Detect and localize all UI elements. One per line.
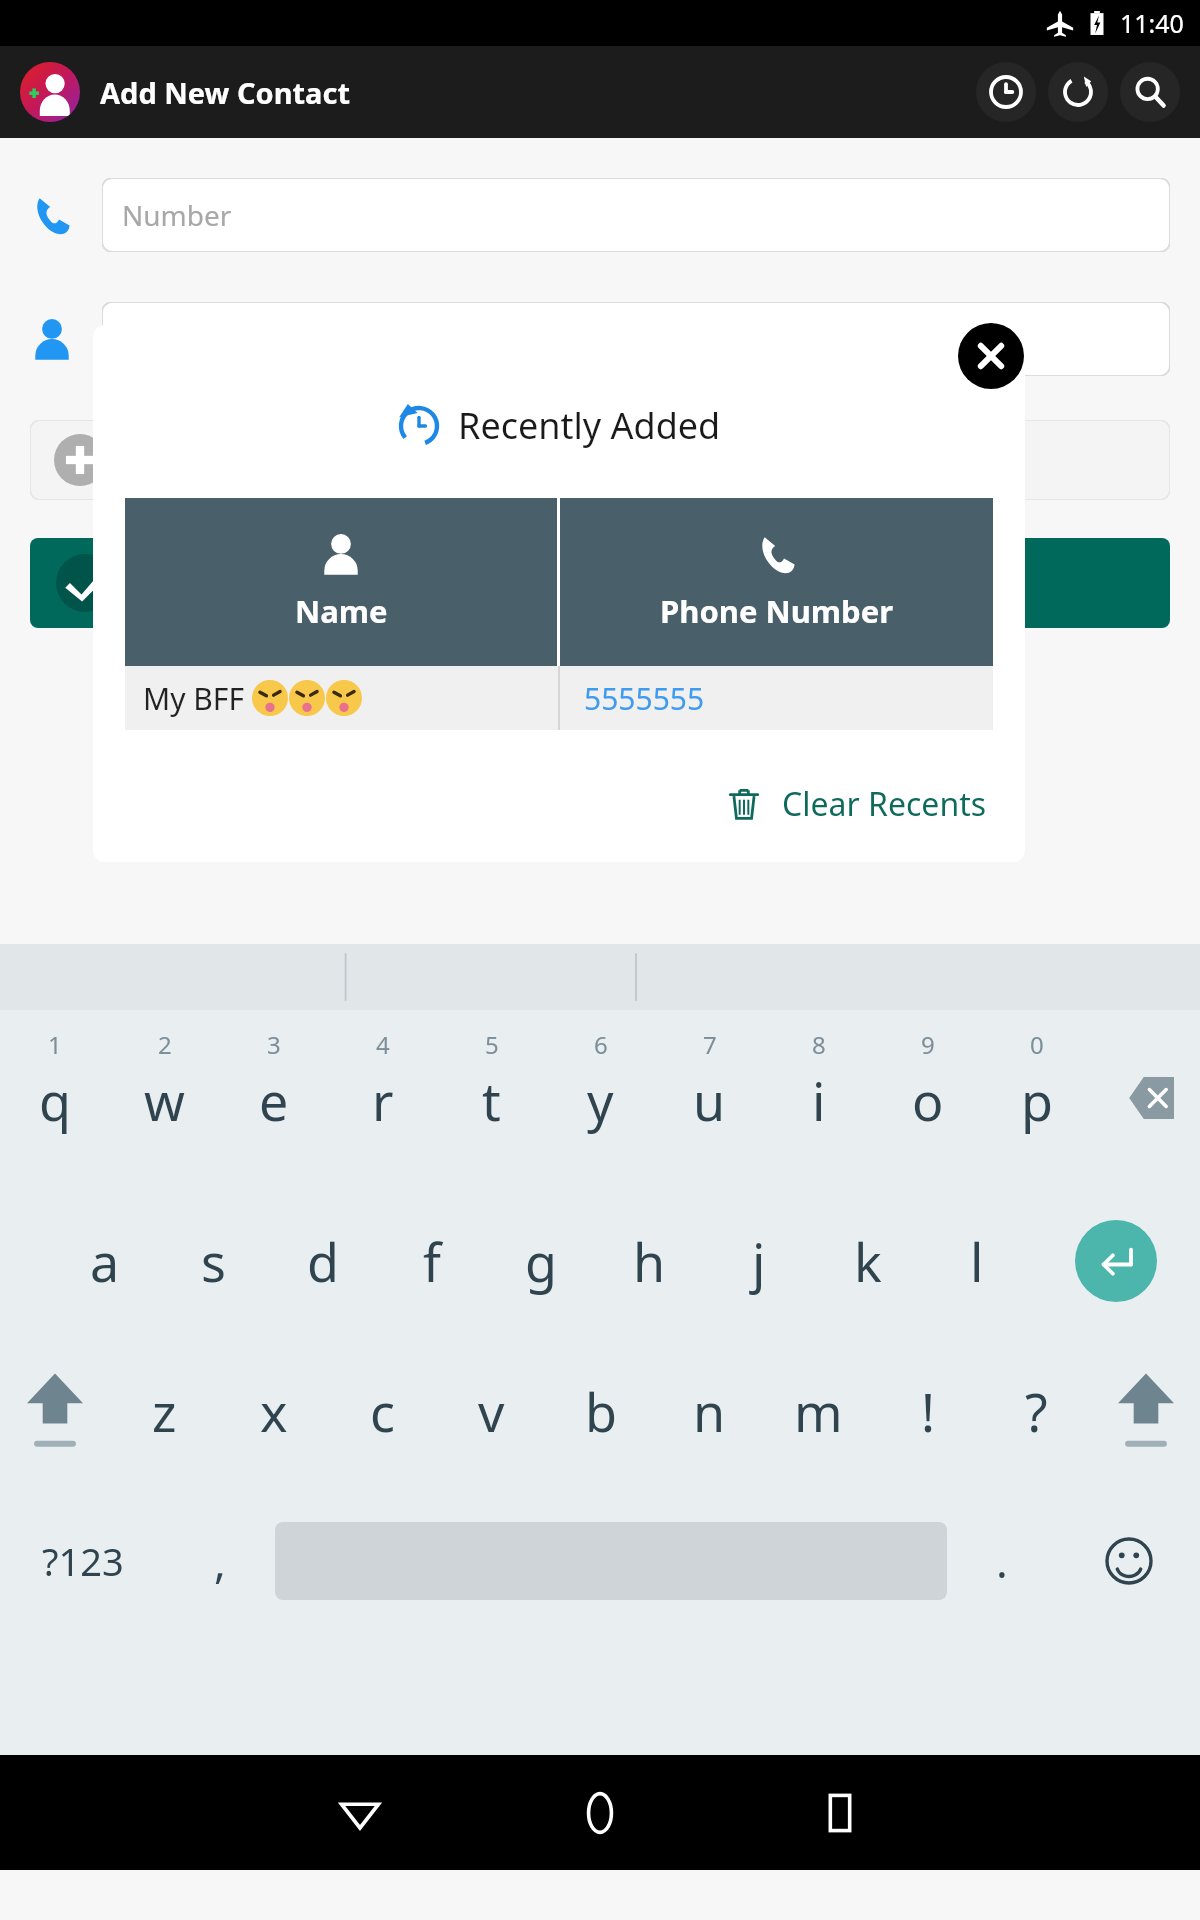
button[interactable]: Clear Recents xyxy=(716,774,997,834)
button[interactable]: Search xyxy=(1120,62,1180,122)
button[interactable]: Name xyxy=(125,498,557,666)
staticText: ! xyxy=(921,1376,935,1447)
button[interactable]: k xyxy=(813,1186,922,1336)
button[interactable]: s xyxy=(159,1186,268,1336)
button[interactable]: Save contact xyxy=(30,538,1170,628)
button[interactable]: c xyxy=(328,1336,437,1486)
button[interactable]: Home xyxy=(480,1755,720,1870)
staticText: f xyxy=(423,1226,441,1297)
staticText: l xyxy=(970,1226,984,1297)
staticText: b xyxy=(585,1376,617,1447)
staticText: x xyxy=(260,1376,288,1447)
staticText: w xyxy=(144,1065,185,1136)
staticText: 2 xyxy=(158,1028,172,1061)
button[interactable] xyxy=(102,302,1170,376)
staticText: t xyxy=(482,1065,501,1136)
button[interactable]: 1 xyxy=(0,1010,110,1186)
staticText: Name xyxy=(295,590,388,632)
button[interactable]: 0 xyxy=(982,1010,1091,1186)
staticText: 6 xyxy=(594,1028,608,1061)
staticText: a xyxy=(90,1226,120,1297)
button[interactable]: , xyxy=(165,1486,275,1636)
staticText: q xyxy=(39,1065,71,1136)
button[interactable]: ! xyxy=(873,1336,982,1486)
button[interactable]: 6 xyxy=(546,1010,655,1186)
button[interactable]: ?123 xyxy=(0,1486,165,1636)
button[interactable]: 8 xyxy=(764,1010,873,1186)
staticText: ? xyxy=(1025,1376,1048,1447)
button[interactable]: 9 xyxy=(873,1010,982,1186)
staticText: y xyxy=(587,1065,614,1136)
staticText: 5555555 xyxy=(584,678,705,719)
staticText: e xyxy=(259,1065,289,1136)
button[interactable]: Back xyxy=(240,1755,480,1870)
button[interactable]: n xyxy=(655,1336,764,1486)
button[interactable]: Contact avatar xyxy=(20,62,80,122)
staticText: . xyxy=(996,1531,1008,1591)
button[interactable]: f xyxy=(377,1186,486,1336)
button[interactable]: My BFF xyxy=(125,666,993,730)
button[interactable]: Backspace xyxy=(1091,1010,1200,1186)
button[interactable]: z xyxy=(110,1336,219,1486)
staticText: 4 xyxy=(376,1028,390,1061)
staticText: o xyxy=(912,1065,944,1136)
button[interactable]: 4 xyxy=(328,1010,437,1186)
staticText: 0 xyxy=(1030,1028,1044,1061)
button[interactable]: Enter xyxy=(1031,1186,1200,1336)
staticText: i xyxy=(812,1065,826,1136)
button[interactable]: a xyxy=(50,1186,159,1336)
button[interactable]: Shift xyxy=(1091,1336,1200,1486)
button[interactable]: 3 xyxy=(219,1010,328,1186)
button[interactable]: m xyxy=(764,1336,873,1486)
button[interactable]: Close xyxy=(958,323,1024,389)
staticText: s xyxy=(201,1226,226,1297)
button[interactable]: x xyxy=(219,1336,328,1486)
button[interactable]: Recent apps xyxy=(720,1755,960,1870)
staticText: m xyxy=(794,1376,843,1447)
staticText: j xyxy=(752,1226,766,1297)
staticText: Number xyxy=(122,196,232,234)
staticText: Phone Number xyxy=(660,590,894,632)
button[interactable]: Add another field xyxy=(30,420,1170,500)
staticText: , xyxy=(214,1531,226,1591)
staticText: Recently Added xyxy=(458,401,721,450)
button[interactable]: Shift xyxy=(0,1336,110,1486)
button[interactable]: 7 xyxy=(655,1010,764,1186)
staticText: c xyxy=(370,1376,395,1447)
button[interactable]: . xyxy=(947,1486,1057,1636)
button[interactable]: l xyxy=(922,1186,1031,1336)
staticText: ?123 xyxy=(42,1535,124,1587)
staticText: Clear Recents xyxy=(782,782,987,826)
staticText: u xyxy=(693,1065,726,1136)
staticText: 11:40 xyxy=(1120,6,1184,40)
button[interactable]: 2 xyxy=(110,1010,219,1186)
staticText: h xyxy=(633,1226,666,1297)
button[interactable]: j xyxy=(704,1186,813,1336)
staticText: 8 xyxy=(812,1028,826,1061)
button[interactable]: g xyxy=(486,1186,595,1336)
button[interactable]: Phone Number xyxy=(560,498,993,666)
staticText: 1 xyxy=(48,1028,62,1061)
button[interactable]: Number xyxy=(102,178,1170,252)
button[interactable]: h xyxy=(595,1186,704,1336)
staticText: d xyxy=(307,1226,339,1297)
staticText: z xyxy=(152,1376,177,1447)
button[interactable]: ? xyxy=(982,1336,1091,1486)
staticText: g xyxy=(525,1226,557,1297)
button[interactable]: b xyxy=(546,1336,655,1486)
staticText: p xyxy=(1021,1065,1053,1136)
staticText: v xyxy=(478,1376,505,1447)
button[interactable]: v xyxy=(437,1336,546,1486)
button[interactable]: 5 xyxy=(437,1010,546,1186)
button[interactable]: d xyxy=(268,1186,377,1336)
button[interactable]: History xyxy=(976,62,1036,122)
staticText: 9 xyxy=(921,1028,935,1061)
button[interactable]: Emoji keyboard xyxy=(1057,1486,1200,1636)
staticText: Add New Contact xyxy=(100,73,351,112)
staticText: 7 xyxy=(703,1028,717,1061)
staticText: k xyxy=(854,1226,882,1297)
staticText: 3 xyxy=(267,1028,281,1061)
button[interactable]: Refresh xyxy=(1048,62,1108,122)
staticText: 5 xyxy=(485,1028,499,1061)
